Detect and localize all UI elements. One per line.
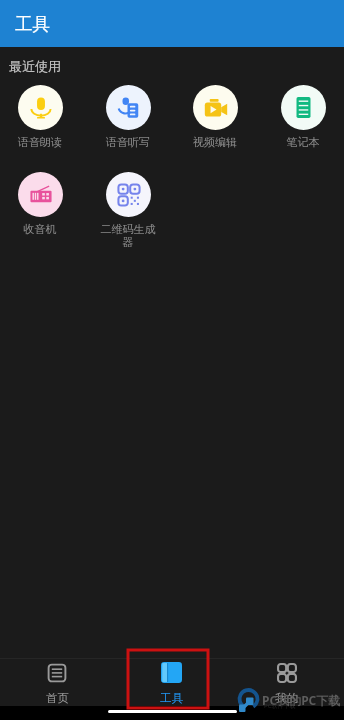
button[interactable]: 我的: [229, 663, 344, 705]
staticText: 视频编辑: [186, 135, 244, 149]
button[interactable]: 语音朗读: [2, 85, 78, 149]
button[interactable]: 笔记本: [265, 85, 341, 149]
staticText: 语音听写: [99, 135, 157, 149]
button[interactable]: 工具: [114, 662, 229, 705]
button[interactable]: 首页: [0, 663, 114, 705]
staticText: 工具: [160, 691, 183, 705]
other: 首页: [47, 663, 67, 683]
button[interactable]: 语音听写: [90, 85, 166, 149]
staticText: 最近使用: [9, 58, 61, 74]
staticText: 我的: [275, 691, 298, 705]
button[interactable]: 视频编辑: [177, 85, 253, 149]
staticText: 语音朗读: [11, 135, 69, 149]
staticText: PC我的PC下载: [262, 692, 341, 708]
staticText: 笔记本: [274, 135, 332, 149]
button[interactable]: 收音机: [2, 172, 78, 236]
other: 我的: [277, 663, 297, 683]
other: 工具: [161, 662, 182, 683]
button[interactable]: 二维码生成器: [90, 172, 166, 250]
staticText: PC软件下载: [264, 702, 296, 710]
button[interactable]: 工具: [0, 0, 344, 47]
staticText: 收音机: [11, 222, 69, 236]
staticText: 工具: [15, 13, 50, 35]
staticText: 二维码生成器: [99, 222, 157, 250]
staticText: 首页: [46, 691, 69, 705]
